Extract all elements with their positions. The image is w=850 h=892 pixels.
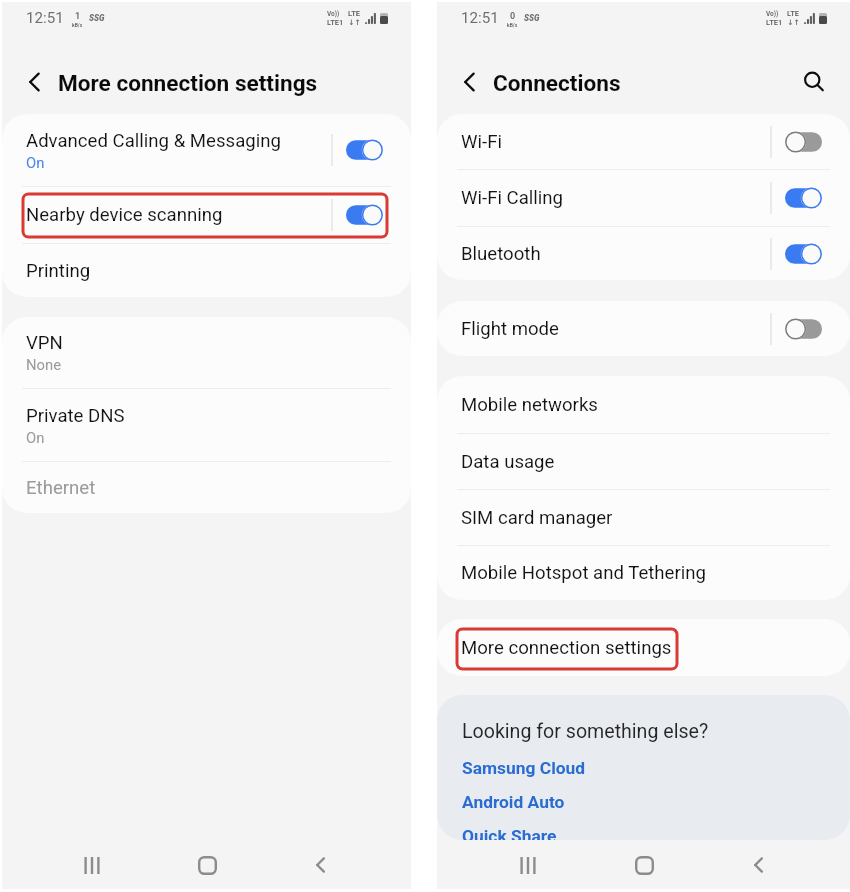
button[interactable]: Back	[735, 841, 783, 889]
button[interactable]: Home	[620, 841, 668, 889]
button[interactable]: Bluetooth	[437, 227, 850, 280]
staticText: LTE1	[766, 18, 783, 27]
staticText: SIM card manager	[461, 507, 613, 529]
button[interactable]: Navigate up	[15, 62, 55, 102]
button[interactable]: Flight mode	[437, 301, 850, 356]
button[interactable]: Recent apps	[504, 841, 552, 889]
staticText: LTE1	[327, 18, 344, 27]
button[interactable]: Printing	[2, 244, 411, 297]
staticText: SSG	[89, 13, 105, 23]
staticText: SSG	[524, 13, 540, 23]
staticText: ↓↑	[348, 18, 361, 27]
button[interactable]: Ethernet	[2, 462, 411, 513]
staticText: Mobile Hotspot and Tethering	[461, 562, 706, 584]
staticText: 12:51	[461, 9, 499, 27]
staticText: LTE	[348, 9, 361, 18]
staticText: Private DNS	[26, 405, 125, 427]
staticText: Vo))	[766, 10, 779, 18]
button[interactable]: SIM card manager	[437, 490, 850, 545]
staticText: Bluetooth	[461, 243, 541, 265]
button[interactable]: Wi-Fi	[437, 114, 850, 169]
button[interactable]: Navigate up	[450, 62, 490, 102]
staticText: Mobile networks	[461, 394, 598, 416]
staticText: Wi-Fi	[461, 131, 502, 153]
button[interactable]: More connection settings	[437, 619, 850, 676]
button[interactable]: Home	[183, 841, 231, 889]
staticText: Nearby device scanning	[26, 204, 223, 226]
staticText: On	[26, 154, 45, 171]
button[interactable]: Quick Share	[462, 826, 557, 840]
staticText: Flight mode	[461, 318, 559, 340]
button[interactable]: Switch off	[785, 318, 822, 340]
staticText: On	[26, 429, 45, 446]
button[interactable]: Wi-Fi Calling	[437, 170, 850, 226]
staticText: Looking for something else?	[462, 720, 709, 743]
staticText: Data usage	[461, 451, 555, 473]
button[interactable]: Advanced Calling & Messaging	[2, 114, 411, 186]
staticText: kB/s	[72, 22, 83, 28]
button[interactable]: Private DNS	[2, 389, 411, 461]
staticText: ↓↑	[787, 18, 800, 27]
staticText: Advanced Calling & Messaging	[26, 130, 281, 152]
staticText: More connection settings	[58, 70, 318, 96]
button[interactable]: Switch on	[785, 243, 822, 265]
button[interactable]: Mobile Hotspot and Tethering	[437, 546, 850, 600]
button[interactable]: Android Auto	[462, 792, 565, 812]
staticText: 1	[75, 11, 81, 22]
staticText: LTE	[787, 9, 800, 18]
staticText: None	[26, 356, 62, 373]
staticText: Vo))	[327, 10, 340, 18]
staticText: 12:51	[26, 9, 64, 27]
staticText: More connection settings	[461, 637, 672, 659]
button[interactable]: VPN	[2, 317, 411, 388]
staticText: Wi-Fi Calling	[461, 187, 564, 209]
staticText: VPN	[26, 332, 63, 354]
button[interactable]: Switch on	[346, 204, 383, 226]
button[interactable]: Switch on	[346, 139, 383, 161]
button[interactable]: Nearby device scanning	[2, 187, 411, 243]
staticText: Ethernet	[26, 477, 96, 499]
button[interactable]: Samsung Cloud	[462, 758, 586, 778]
staticText: kB/s	[507, 22, 518, 28]
button[interactable]: Back	[297, 841, 345, 889]
button[interactable]: Switch on	[785, 187, 822, 209]
staticText: Connections	[493, 70, 621, 96]
staticText: Printing	[26, 260, 91, 282]
button[interactable]: Search	[794, 62, 834, 102]
button[interactable]: Switch off	[785, 131, 822, 153]
staticText: 0	[510, 11, 516, 22]
button[interactable]: Data usage	[437, 434, 850, 489]
button[interactable]: Recent apps	[68, 841, 116, 889]
button[interactable]: Mobile networks	[437, 376, 850, 433]
